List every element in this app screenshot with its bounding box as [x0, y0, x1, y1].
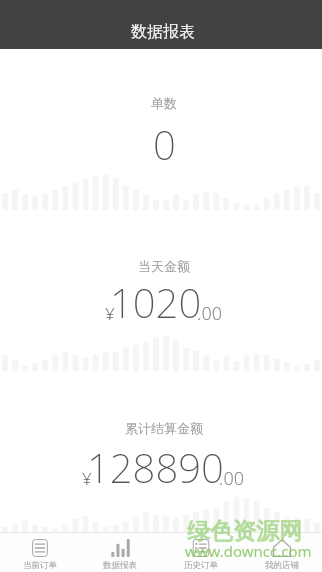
staticText: .00 — [219, 466, 244, 491]
staticText: www.downcc.com — [185, 541, 312, 561]
staticText: 单数 — [151, 95, 177, 111]
staticText: 历史订单 — [184, 560, 218, 571]
staticText: 数据报表 — [131, 22, 195, 42]
staticText: 128890 — [87, 440, 224, 494]
staticText: 绿色资源网 — [187, 517, 302, 546]
staticText: 当前订单 — [23, 560, 57, 571]
staticText: 1020 — [110, 275, 202, 329]
staticText: 数据报表 — [103, 560, 137, 571]
staticText: 0 — [153, 117, 176, 171]
button[interactable]: 当前订单 — [0, 533, 80, 572]
staticText: 我的店铺 — [265, 560, 299, 571]
staticText: 当天金额 — [138, 258, 190, 274]
button[interactable]: 数据报表 — [80, 533, 160, 572]
staticText: ¥ — [82, 467, 90, 490]
button[interactable]: 我的店铺 — [241, 533, 322, 572]
staticText: 累计结算金额 — [125, 420, 203, 436]
staticText: ¥ — [105, 302, 113, 325]
staticText: .00 — [197, 301, 222, 326]
button[interactable]: 历史订单 — [160, 533, 241, 572]
